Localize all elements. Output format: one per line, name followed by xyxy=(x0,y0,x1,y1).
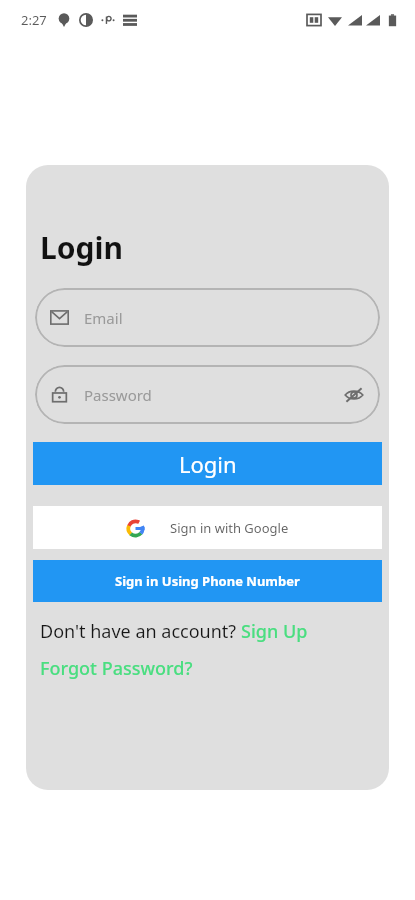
button[interactable]: Sign Up xyxy=(241,619,308,644)
button[interactable]: Sign in Using Phone Number xyxy=(33,560,382,602)
button[interactable]: Login xyxy=(33,442,382,485)
button[interactable]: Sign in with Google xyxy=(33,506,382,549)
button[interactable]: Email xyxy=(35,288,380,347)
staticText: Sign in with Google xyxy=(170,519,289,537)
staticText: Forgot Password? xyxy=(40,656,193,681)
staticText: Login xyxy=(179,449,237,479)
staticText: Login xyxy=(40,227,123,268)
staticText: 2:27 xyxy=(21,11,47,29)
button[interactable]: Show password xyxy=(343,384,365,406)
staticText: Password xyxy=(84,385,152,405)
staticText: Don't have an account? xyxy=(40,619,241,644)
button[interactable]: Forgot Password? xyxy=(40,656,193,681)
staticText: Sign in Using Phone Number xyxy=(115,572,300,590)
staticText: Email xyxy=(84,308,123,328)
staticText: Sign Up xyxy=(241,619,308,644)
button[interactable]: Password xyxy=(35,365,380,424)
